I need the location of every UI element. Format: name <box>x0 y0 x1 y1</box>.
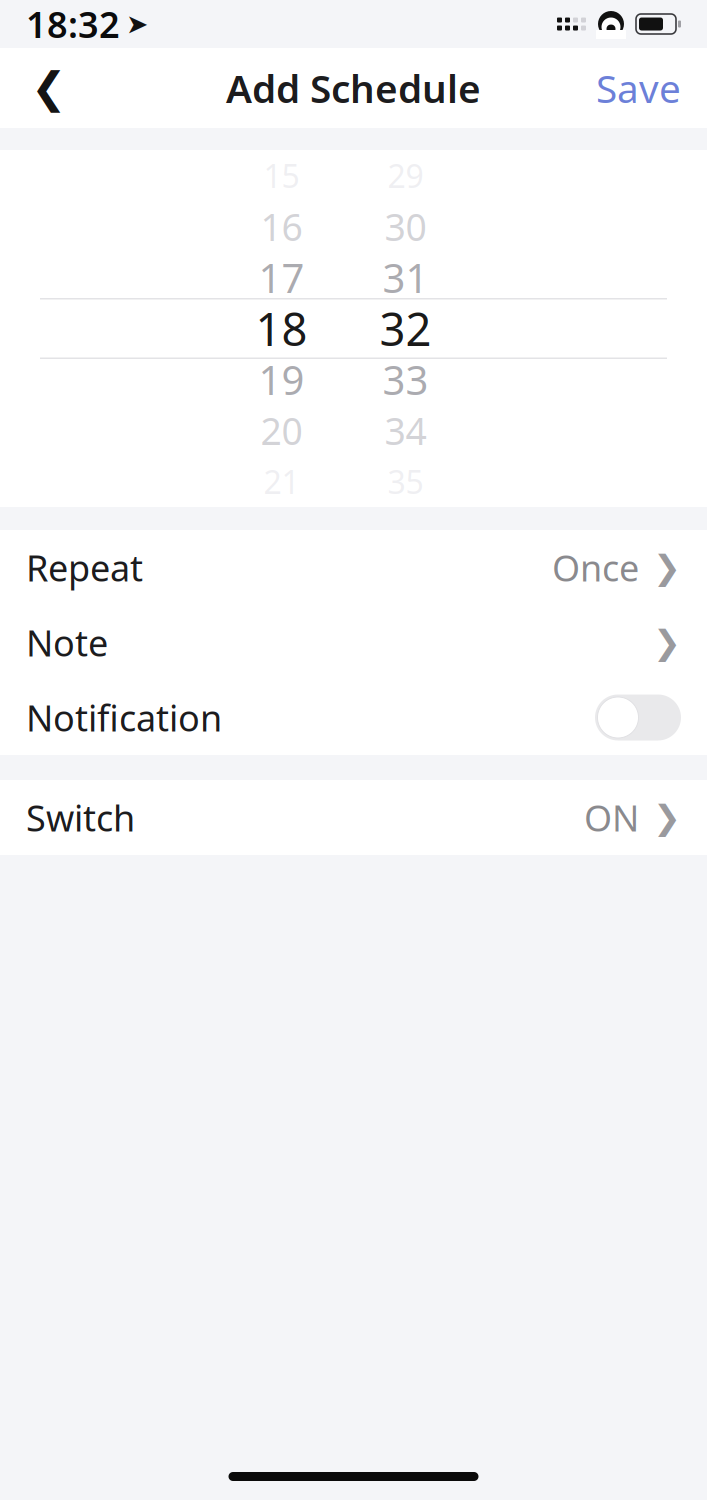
staticText: 34 <box>384 406 426 455</box>
staticText: ❮ <box>31 64 67 112</box>
staticText: 33 <box>382 353 428 406</box>
staticText: Switch <box>26 794 135 841</box>
staticText: Save <box>596 62 681 114</box>
staticText: 21 <box>263 460 299 503</box>
staticText: ON <box>584 794 639 841</box>
staticText: 15 <box>263 154 299 197</box>
staticText: 30 <box>384 202 426 251</box>
button[interactable]: Notification <box>0 680 707 755</box>
staticText: 16 <box>260 202 302 251</box>
button[interactable]: Repeat <box>0 530 707 605</box>
staticText: Add Schedule <box>226 62 481 114</box>
staticText: 35 <box>387 460 423 503</box>
staticText: 31 <box>382 251 428 304</box>
staticText: Repeat <box>26 544 143 591</box>
staticText: ❯ <box>653 799 681 836</box>
staticText: 32 <box>379 298 431 359</box>
button[interactable]: Back <box>18 55 80 121</box>
staticText: ❯ <box>653 549 681 586</box>
button[interactable]: Save <box>588 46 689 130</box>
staticText: 17 <box>258 251 304 304</box>
button[interactable]: Switch <box>0 780 707 855</box>
staticText: 18:32 <box>26 0 120 48</box>
staticText: 19 <box>258 353 304 406</box>
staticText: Note <box>26 619 108 666</box>
staticText: 29 <box>387 154 423 197</box>
staticText: Notification <box>26 694 222 741</box>
button[interactable]: Note <box>0 605 707 680</box>
staticText: 20 <box>260 406 302 455</box>
staticText: 18 <box>255 298 307 359</box>
staticText: ➤ <box>126 9 148 39</box>
staticText: ❯ <box>653 624 681 661</box>
staticText: Once <box>552 544 639 591</box>
